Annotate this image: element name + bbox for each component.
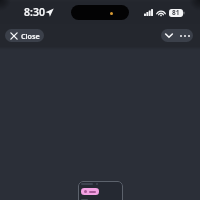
button[interactable]: More options (177, 29, 193, 42)
button[interactable]: Close (5, 29, 44, 42)
staticText: 8:30 (24, 5, 45, 19)
staticText: 81 (172, 8, 180, 17)
staticText: Close (21, 31, 40, 41)
button[interactable] (78, 181, 123, 200)
button[interactable]: Collapse (161, 29, 177, 42)
